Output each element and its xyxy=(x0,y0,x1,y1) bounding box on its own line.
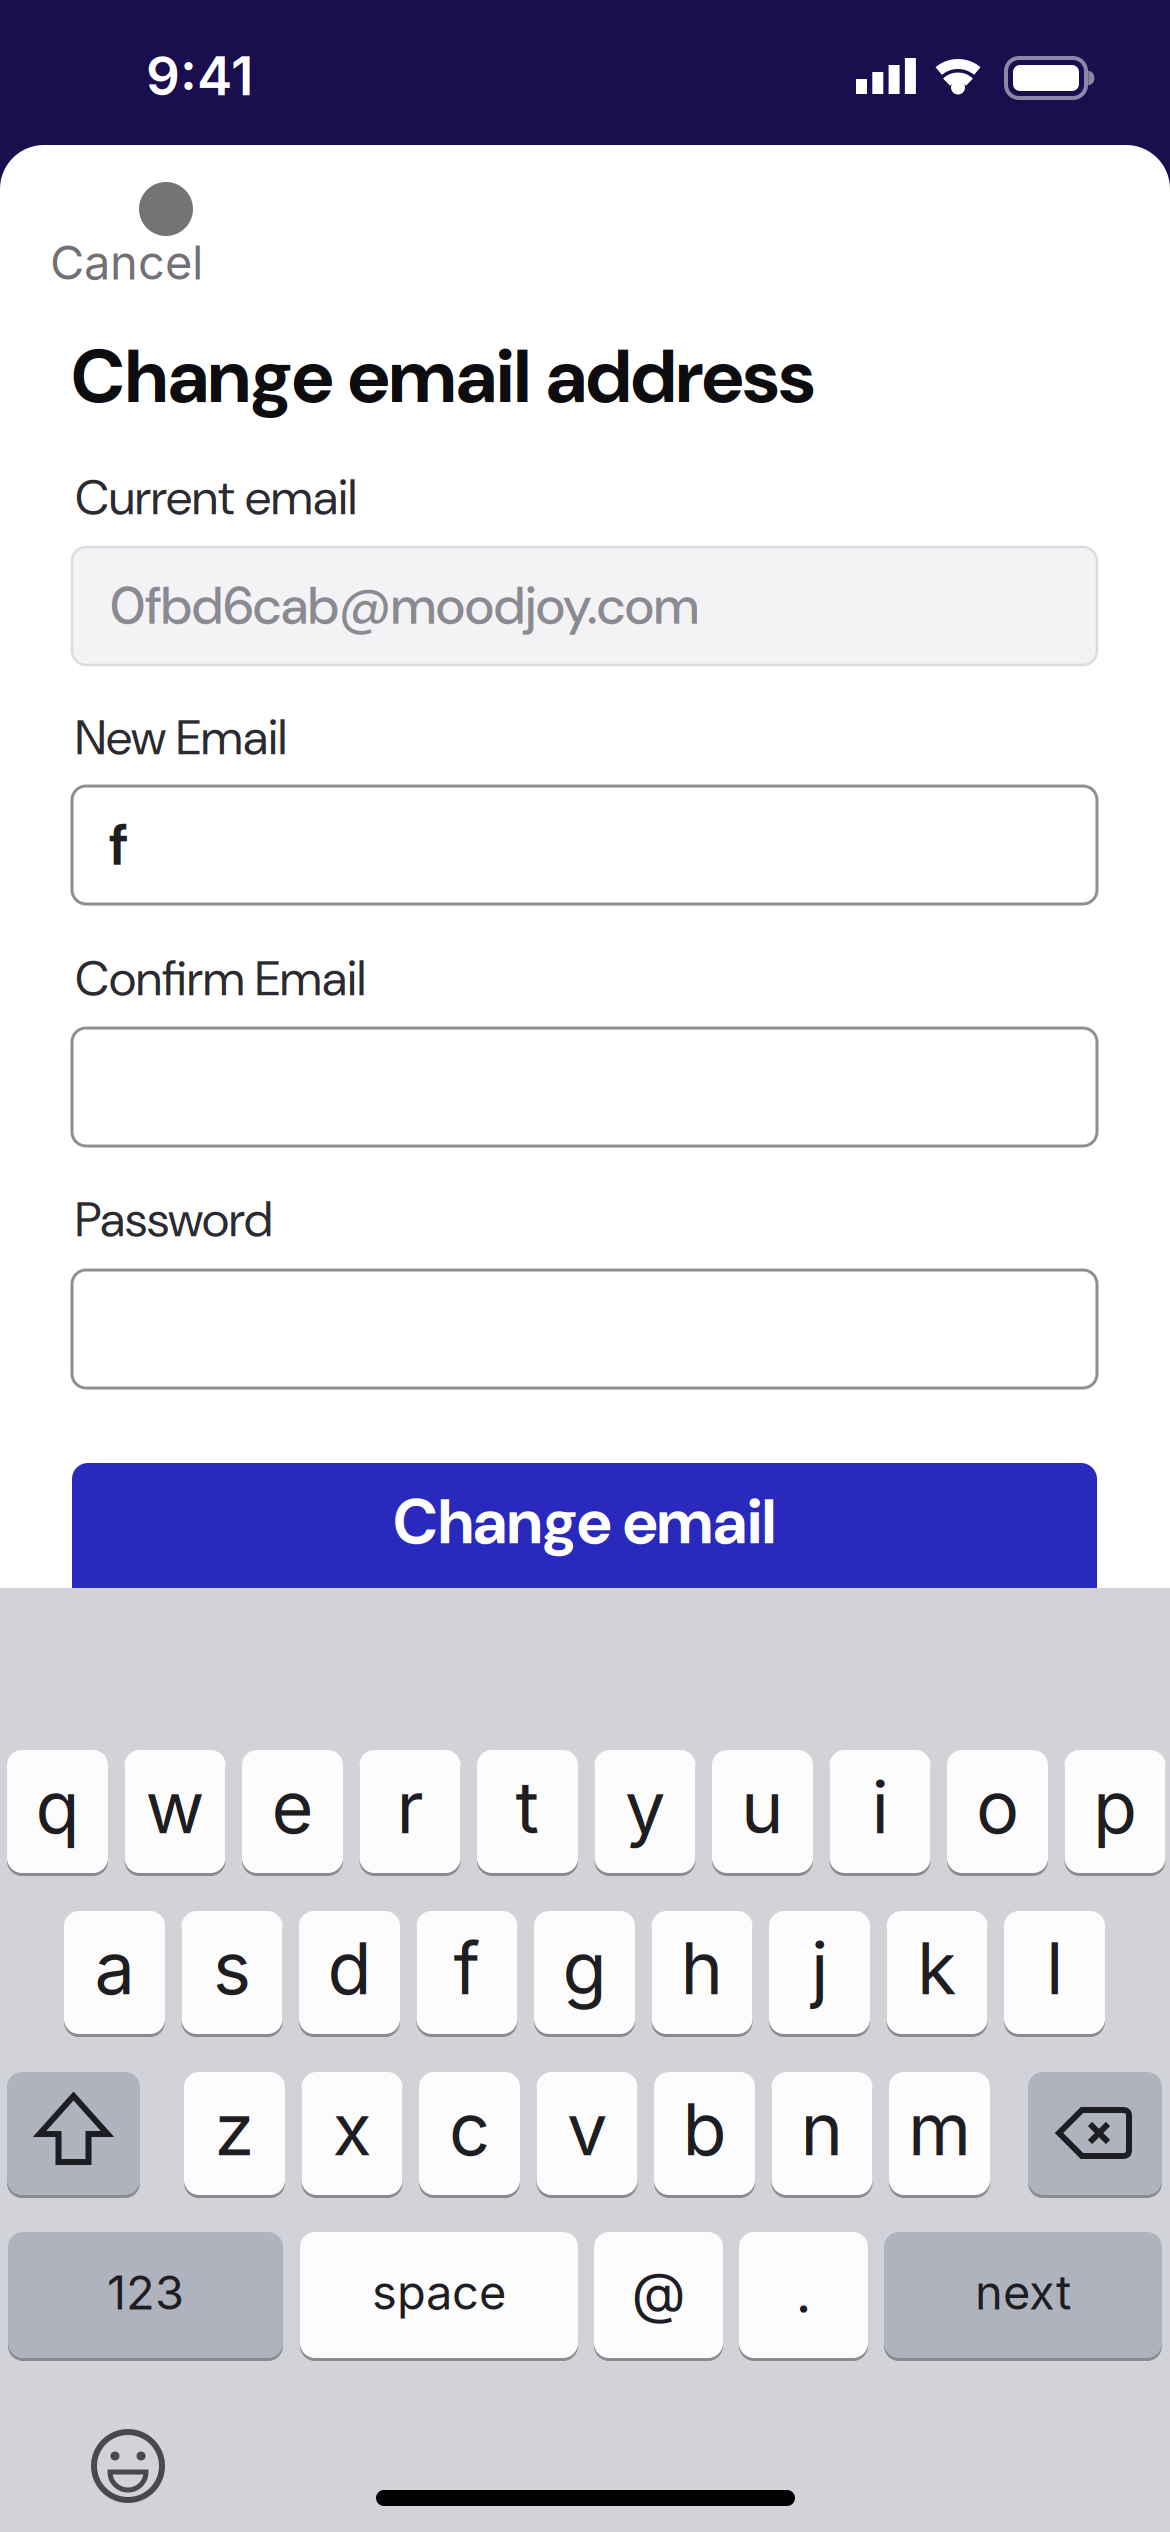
staticText: Change email xyxy=(393,1482,776,1562)
staticText: r xyxy=(396,1763,423,1850)
button[interactable]: f xyxy=(72,786,1097,904)
button[interactable]: b xyxy=(654,2072,755,2198)
button[interactable]: u xyxy=(712,1750,813,1876)
button[interactable]: space xyxy=(300,2232,578,2361)
staticText: Change email address xyxy=(71,328,815,425)
staticText: Confirm Email xyxy=(75,947,366,1010)
button[interactable]: f xyxy=(416,1911,517,2037)
button[interactable]: h xyxy=(651,1911,752,2037)
staticText: w xyxy=(145,1763,204,1850)
staticText: New Email xyxy=(75,706,287,769)
button[interactable]: Emoji xyxy=(88,2429,168,2505)
button[interactable]: 123 xyxy=(8,2232,283,2361)
staticText: a xyxy=(94,1924,134,2011)
staticText: @ xyxy=(631,2259,685,2326)
button[interactable]: Cancel xyxy=(50,234,203,291)
button[interactable]: i xyxy=(829,1750,930,1876)
button[interactable]: j xyxy=(769,1911,870,2037)
staticText: e xyxy=(271,1763,313,1850)
staticText: Password xyxy=(75,1188,273,1251)
staticText: o xyxy=(976,1763,1019,1850)
staticText: z xyxy=(214,2085,254,2172)
button[interactable]: d xyxy=(299,1911,400,2037)
staticText: c xyxy=(449,2085,490,2172)
button[interactable]: Confirm Email xyxy=(72,1028,1097,1146)
button[interactable]: s xyxy=(181,1911,282,2037)
staticText: k xyxy=(917,1924,957,2011)
button[interactable]: z xyxy=(184,2072,285,2198)
staticText: b xyxy=(682,2085,726,2172)
button[interactable]: g xyxy=(534,1911,635,2037)
button[interactable]: m xyxy=(889,2072,990,2198)
button[interactable]: x xyxy=(301,2072,402,2198)
button[interactable]: next xyxy=(884,2232,1162,2361)
button[interactable]: q xyxy=(7,1750,108,1876)
staticText: t xyxy=(515,1763,539,1850)
staticText: i xyxy=(871,1763,888,1850)
button[interactable]: Shift xyxy=(7,2072,140,2198)
staticText: n xyxy=(800,2085,843,2172)
button[interactable]: o xyxy=(947,1750,1048,1876)
staticText: . xyxy=(795,2259,811,2326)
staticText: f xyxy=(109,807,128,883)
staticText: j xyxy=(811,1924,828,2011)
button[interactable]: c xyxy=(419,2072,520,2198)
button[interactable]: a xyxy=(64,1911,165,2037)
button[interactable]: Change email xyxy=(72,1463,1097,1605)
staticText: space xyxy=(372,2264,506,2321)
button[interactable]: l xyxy=(1004,1911,1105,2037)
staticText: p xyxy=(1093,1763,1137,1850)
staticText: g xyxy=(562,1924,606,2011)
button[interactable]: p xyxy=(1064,1750,1165,1876)
button[interactable]: n xyxy=(771,2072,872,2198)
staticText: f xyxy=(453,1924,480,2011)
staticText: Current email xyxy=(75,466,357,529)
staticText: v xyxy=(567,2085,607,2172)
staticText: l xyxy=(1046,1924,1063,2011)
staticText: 0fbd6cab@moodjoy.com xyxy=(110,572,699,640)
button[interactable]: . xyxy=(739,2232,868,2361)
button[interactable]: r xyxy=(359,1750,460,1876)
staticText: d xyxy=(327,1924,371,2011)
staticText: Cancel xyxy=(50,234,203,291)
button[interactable]: k xyxy=(886,1911,987,2037)
staticText: 9:41 xyxy=(146,44,253,108)
button[interactable]: v xyxy=(536,2072,637,2198)
staticText: 123 xyxy=(107,2264,184,2321)
staticText: m xyxy=(908,2085,971,2172)
button[interactable]: t xyxy=(477,1750,578,1876)
button[interactable]: y xyxy=(594,1750,695,1876)
staticText: x xyxy=(332,2085,371,2172)
button[interactable]: w xyxy=(124,1750,225,1876)
staticText: q xyxy=(35,1763,79,1850)
button[interactable]: Password xyxy=(72,1270,1097,1388)
staticText: s xyxy=(213,1924,251,2011)
staticText: y xyxy=(625,1763,665,1850)
staticText: u xyxy=(741,1763,784,1850)
button[interactable]: e xyxy=(242,1750,343,1876)
button[interactable]: @ xyxy=(594,2232,723,2361)
staticText: h xyxy=(680,1924,723,2011)
staticText: next xyxy=(975,2264,1071,2321)
button[interactable]: Delete xyxy=(1028,2072,1162,2198)
